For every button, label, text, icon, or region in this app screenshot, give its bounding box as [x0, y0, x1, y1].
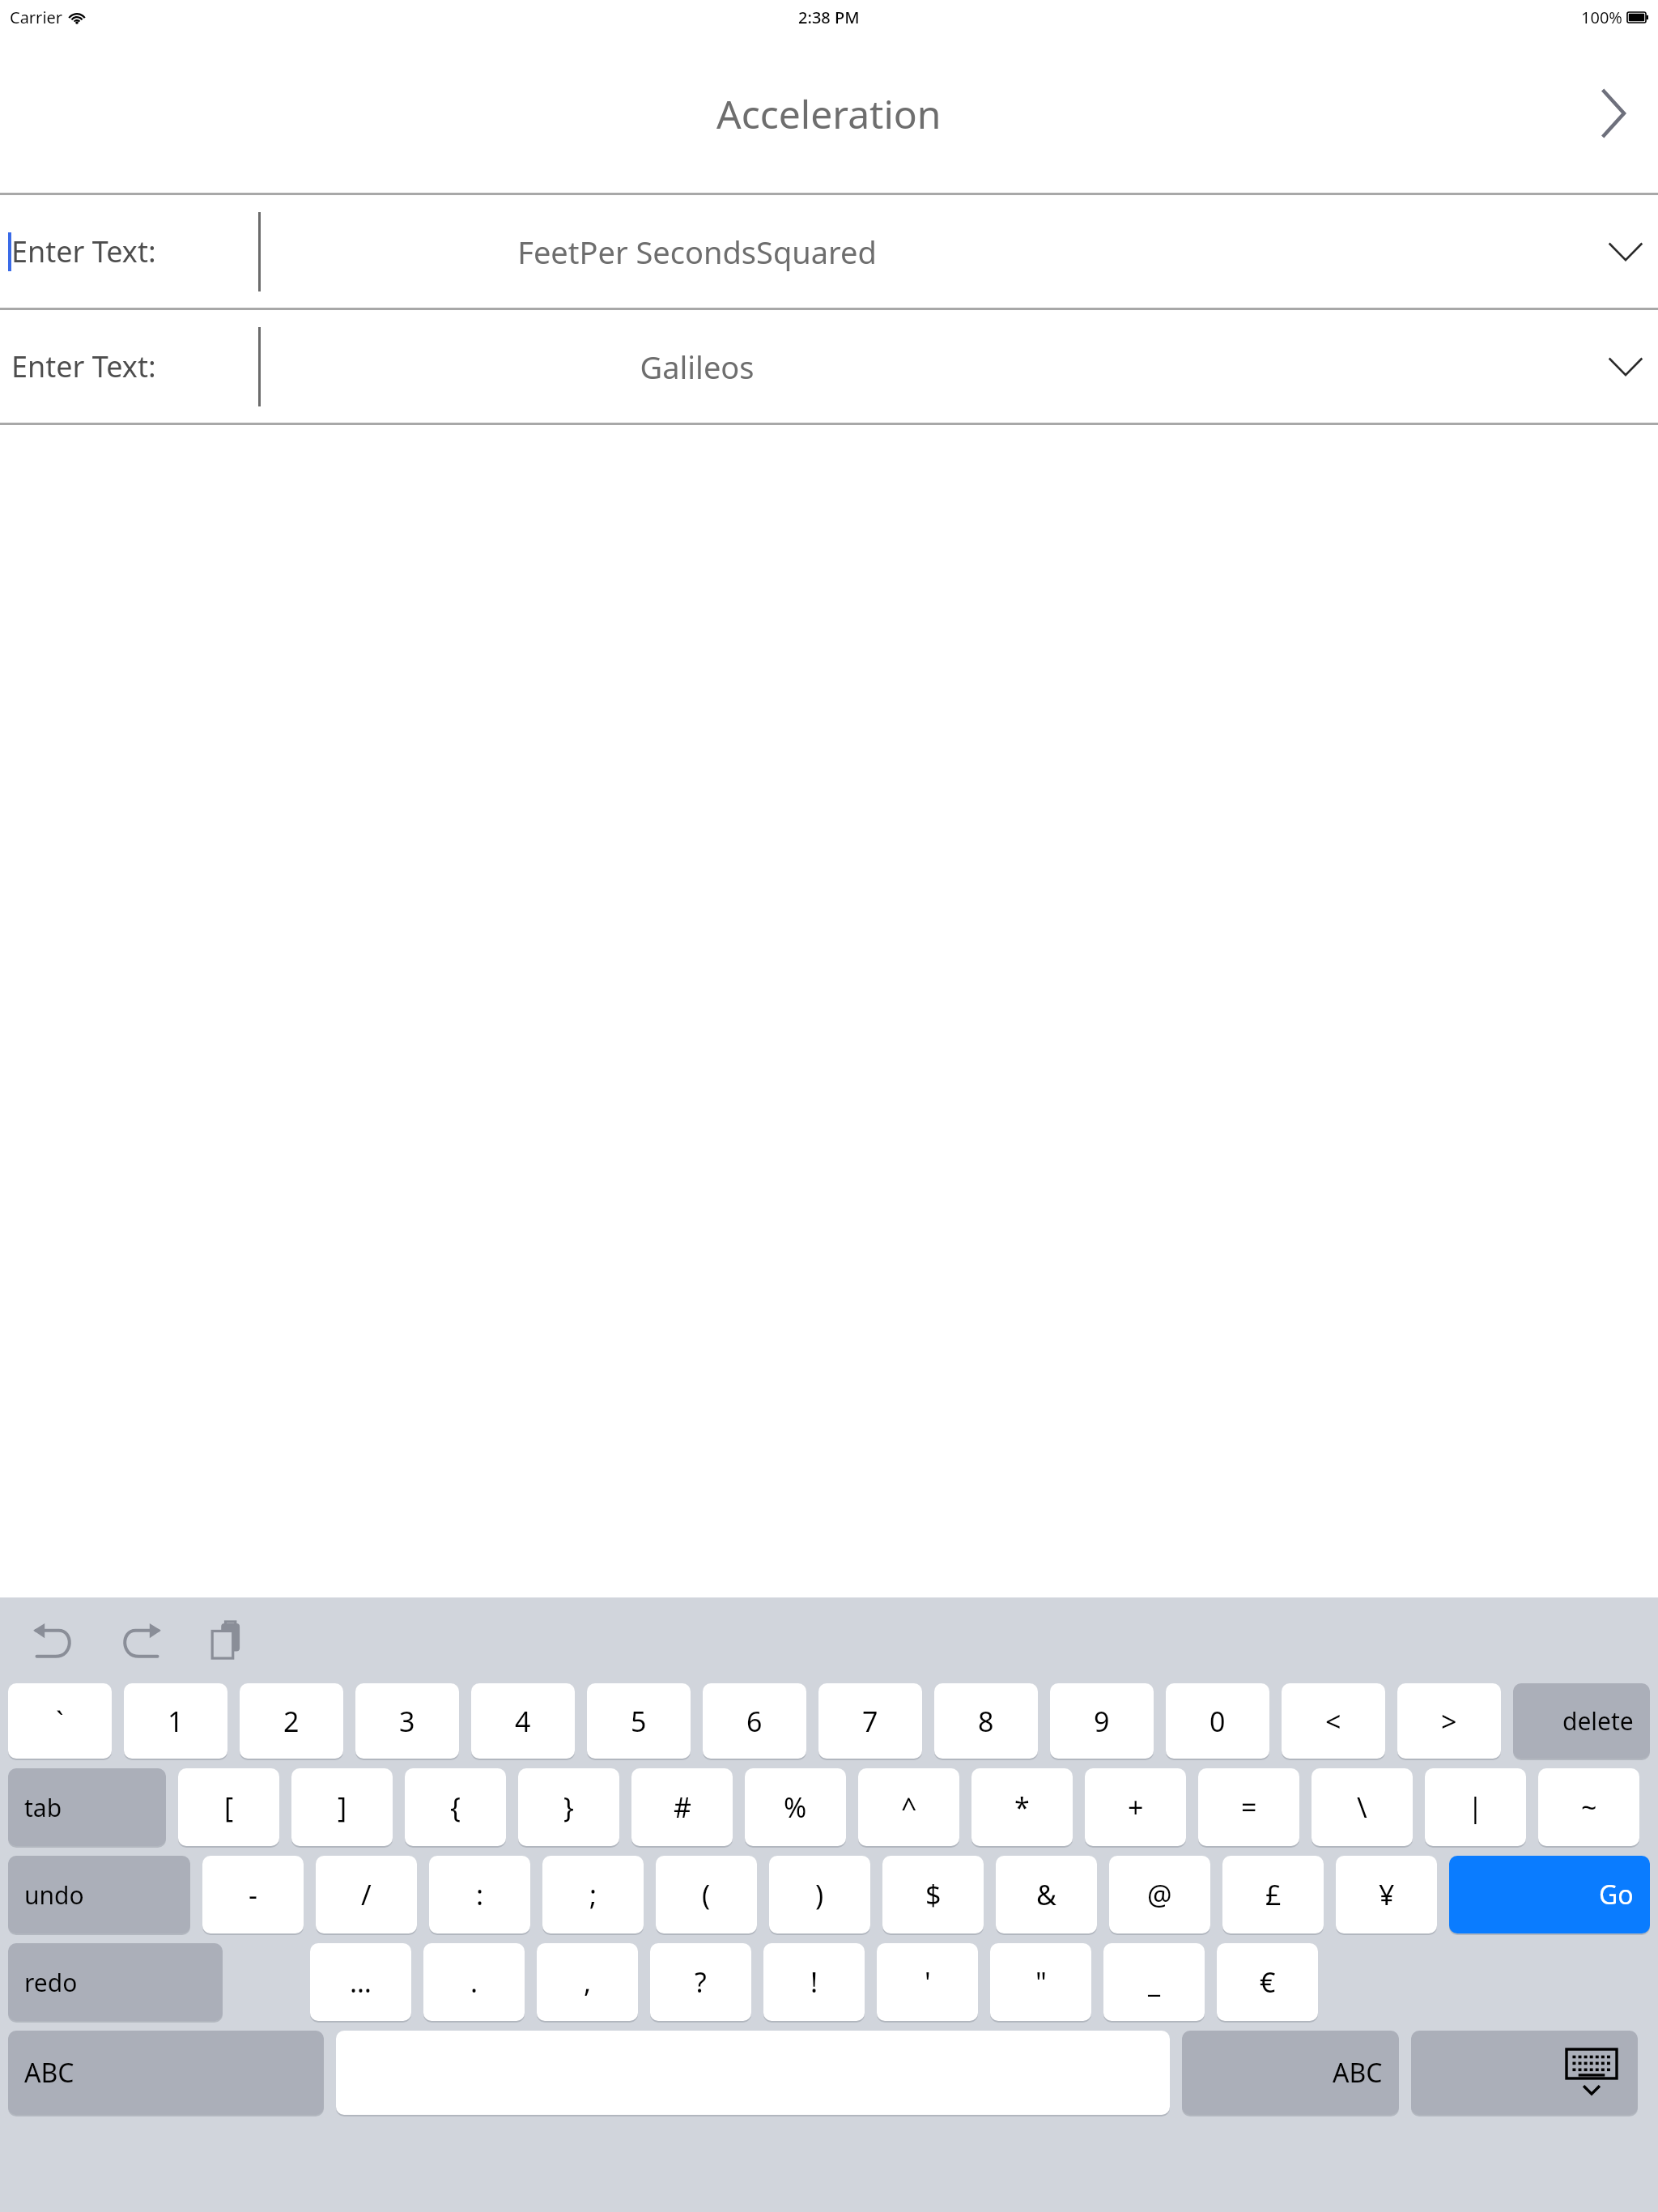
button[interactable]: " [990, 1943, 1091, 2021]
staticText: Enter Text: [11, 232, 156, 271]
staticText: 8 [978, 1703, 994, 1740]
button[interactable]: 8 [934, 1683, 1038, 1759]
staticText: tab [24, 1791, 62, 1824]
button[interactable]: Undo [23, 1610, 84, 1671]
button[interactable]: ? [650, 1943, 751, 2021]
button[interactable]: % [745, 1768, 846, 1846]
button[interactable]: } [518, 1768, 619, 1846]
button[interactable]: Go [1449, 1856, 1650, 1933]
button[interactable]: 2 [240, 1683, 343, 1759]
button[interactable]: { [405, 1768, 506, 1846]
staticText: delete [1562, 1704, 1634, 1738]
button[interactable]: Enter Text: [0, 195, 1658, 308]
button[interactable]: redo [8, 1943, 223, 2021]
staticText: 2 [283, 1703, 300, 1740]
button[interactable]: 9 [1050, 1683, 1154, 1759]
staticText: [ [224, 1789, 234, 1826]
staticText: Carrier [10, 6, 63, 28]
button[interactable]: $ [882, 1856, 984, 1933]
staticText: ABC [1333, 2055, 1383, 2091]
button[interactable]: Expand [1601, 228, 1650, 276]
staticText: … [350, 1963, 372, 2001]
button[interactable]: [ [178, 1768, 279, 1846]
staticText: Enter Text: [11, 347, 156, 386]
staticText: 2:38 PM [798, 6, 860, 28]
button[interactable]: . [423, 1943, 525, 2021]
button[interactable]: ] [291, 1768, 393, 1846]
staticText: | [1468, 1789, 1483, 1826]
button[interactable]: ) [769, 1856, 870, 1933]
button[interactable]: ^ [858, 1768, 959, 1846]
button[interactable]: Enter Text: [0, 310, 1658, 423]
button[interactable]: ! [763, 1943, 865, 2021]
staticText: Acceleration [716, 87, 942, 140]
button[interactable]: ~ [1538, 1768, 1639, 1846]
button[interactable]: 5 [587, 1683, 691, 1759]
button[interactable]: & [996, 1856, 1097, 1933]
button[interactable]: : [429, 1856, 530, 1933]
staticText: 3 [399, 1703, 415, 1740]
button[interactable]: delete [1513, 1683, 1650, 1759]
button[interactable]: tab [8, 1768, 166, 1846]
staticText: \ [1357, 1789, 1367, 1826]
button[interactable]: 3 [355, 1683, 459, 1759]
button[interactable]: ( [656, 1856, 757, 1933]
button[interactable]: Paste [198, 1610, 259, 1671]
staticText: undo [24, 1878, 84, 1912]
button[interactable]: Hide keyboard [1411, 2031, 1638, 2115]
button[interactable]: # [631, 1768, 733, 1846]
staticText: 6 [746, 1703, 763, 1740]
button[interactable]: 0 [1166, 1683, 1269, 1759]
staticText: # [674, 1789, 691, 1826]
button[interactable]: Redo [110, 1610, 172, 1671]
button[interactable]: / [316, 1856, 417, 1933]
button[interactable]: = [1198, 1768, 1299, 1846]
staticText: ^ [901, 1789, 917, 1826]
staticText: ' [925, 1963, 931, 2001]
button[interactable]: Next [1588, 87, 1640, 139]
button[interactable]: , [537, 1943, 638, 2021]
staticText: Galileos [640, 346, 755, 388]
button[interactable]: < [1282, 1683, 1385, 1759]
staticText: " [1035, 1963, 1047, 2001]
staticText: ABC [24, 2055, 74, 2091]
button[interactable]: - [202, 1856, 304, 1933]
button[interactable]: * [971, 1768, 1073, 1846]
staticText: % [784, 1789, 807, 1826]
button[interactable]: 7 [818, 1683, 922, 1759]
button[interactable]: 1 [124, 1683, 227, 1759]
button[interactable]: Expand [1601, 342, 1650, 391]
button[interactable]: undo [8, 1856, 190, 1933]
button[interactable]: € [1217, 1943, 1318, 2021]
staticText: @ [1147, 1876, 1172, 1913]
button[interactable]: ; [542, 1856, 644, 1933]
button[interactable]: ¥ [1336, 1856, 1437, 1933]
staticText: _ [1148, 1963, 1161, 2001]
button[interactable]: + [1085, 1768, 1186, 1846]
staticText: 5 [631, 1703, 647, 1740]
button[interactable]: _ [1103, 1943, 1205, 2021]
button[interactable]: £ [1222, 1856, 1324, 1933]
button[interactable]: > [1397, 1683, 1501, 1759]
staticText: $ [925, 1876, 942, 1913]
staticText: { [450, 1789, 461, 1826]
button[interactable]: 6 [703, 1683, 806, 1759]
staticText: ¥ [1379, 1876, 1395, 1913]
button[interactable]: ABC [8, 2031, 324, 2115]
button[interactable]: 4 [471, 1683, 575, 1759]
button[interactable]: \ [1312, 1768, 1413, 1846]
button[interactable]: ` [8, 1683, 112, 1759]
button[interactable]: @ [1109, 1856, 1210, 1933]
staticText: 4 [515, 1703, 531, 1740]
button[interactable]: ' [877, 1943, 978, 2021]
staticText: ` [56, 1703, 64, 1740]
button[interactable]: | [1425, 1768, 1526, 1846]
staticText: ( [702, 1876, 711, 1913]
staticText: : [476, 1876, 484, 1913]
button[interactable]: … [310, 1943, 411, 2021]
staticText: ) [815, 1876, 824, 1913]
staticText: Go [1599, 1877, 1634, 1912]
button[interactable]: ABC [1182, 2031, 1399, 2115]
staticText: > [1441, 1703, 1457, 1740]
